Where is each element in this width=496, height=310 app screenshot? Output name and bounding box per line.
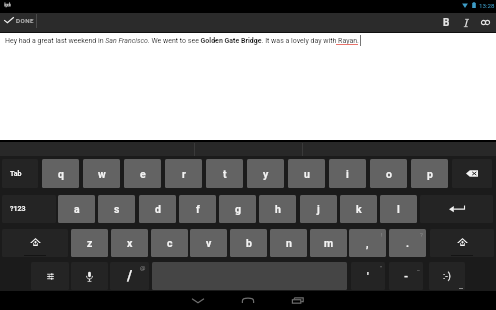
- staticText: d: [155, 203, 161, 215]
- button[interactable]: Tab: [2, 159, 38, 188]
- button[interactable]: h: [259, 195, 296, 223]
- button[interactable]: u: [288, 159, 325, 188]
- button[interactable]: f: [179, 195, 216, 223]
- button[interactable]: Home: [238, 291, 258, 310]
- button[interactable]: ,: [349, 229, 386, 257]
- staticText: x: [127, 237, 133, 249]
- button[interactable]: Insert link: [476, 13, 495, 32]
- staticText: :-): [443, 271, 451, 282]
- button[interactable]: b: [230, 229, 267, 257]
- button[interactable]: :-): [429, 262, 465, 290]
- staticText: a: [74, 203, 80, 215]
- button[interactable]: w: [83, 159, 120, 188]
- staticText: n: [286, 237, 292, 249]
- staticText: c: [167, 237, 173, 249]
- button[interactable]: z: [71, 229, 108, 257]
- staticText: l: [397, 203, 400, 215]
- staticText: s: [114, 203, 120, 215]
- staticText: /: [127, 268, 133, 284]
- button[interactable]: Hide keyboard: [188, 291, 208, 310]
- button[interactable]: Recent apps: [288, 291, 308, 310]
- staticText: f: [196, 203, 200, 215]
- button[interactable]: e: [124, 159, 161, 188]
- staticText: z: [87, 237, 93, 249]
- staticText: b: [246, 237, 252, 249]
- button[interactable]: Input settings: [31, 262, 69, 290]
- staticText: ,: [366, 237, 369, 249]
- staticText: g: [235, 203, 241, 215]
- button[interactable]: Backspace: [452, 159, 492, 188]
- staticText: k: [356, 203, 362, 215]
- staticText: p: [427, 168, 433, 180]
- button[interactable]: l: [380, 195, 417, 223]
- staticText: v: [206, 237, 212, 249]
- staticText: Hey had a great last weekend in San Fran…: [5, 37, 359, 45]
- staticText: ?: [420, 231, 423, 238]
- staticText: j: [317, 203, 320, 215]
- button[interactable]: Shift: [430, 229, 494, 257]
- button[interactable]: r: [165, 159, 202, 188]
- button[interactable]: y: [247, 159, 284, 188]
- button[interactable]: Hey had a great last weekend in San Fran…: [0, 33, 496, 140]
- staticText: m: [324, 237, 334, 249]
- button[interactable]: t: [206, 159, 243, 188]
- button[interactable]: q: [42, 159, 79, 188]
- button[interactable]: Shift: [2, 229, 68, 257]
- staticText: -: [404, 270, 409, 282]
- staticText: r: [182, 168, 186, 180]
- button[interactable]: m: [310, 229, 347, 257]
- button[interactable]: k: [340, 195, 377, 223]
- button[interactable]: Voice input: [71, 262, 108, 290]
- button[interactable]: Enter: [420, 195, 493, 223]
- staticText: _: [417, 264, 420, 271]
- button[interactable]: j: [300, 195, 337, 223]
- staticText: i: [346, 168, 349, 180]
- button[interactable]: g: [219, 195, 256, 223]
- button[interactable]: c: [151, 229, 188, 257]
- button[interactable]: .: [389, 229, 426, 257]
- button[interactable]: p: [411, 159, 448, 188]
- button[interactable]: d: [139, 195, 176, 223]
- button[interactable]: o: [370, 159, 407, 188]
- button[interactable]: x: [111, 229, 148, 257]
- staticText: h: [275, 203, 281, 215]
- button[interactable]: DONE: [0, 13, 36, 32]
- button[interactable]: /: [110, 262, 149, 290]
- button[interactable]: s: [98, 195, 135, 223]
- button[interactable]: B: [437, 13, 456, 32]
- staticText: @: [140, 264, 146, 271]
- staticText: u: [304, 168, 310, 180]
- staticText: 13:28: [479, 2, 495, 9]
- staticText: !: [381, 231, 383, 238]
- button[interactable]: [457, 13, 476, 32]
- staticText: w: [98, 168, 106, 180]
- staticText: Tab: [10, 170, 22, 178]
- staticText: ?123: [10, 205, 26, 213]
- staticText: o: [386, 168, 392, 180]
- button[interactable]: ': [351, 262, 385, 290]
- button[interactable]: a: [58, 195, 95, 223]
- staticText: ': [367, 270, 369, 282]
- button[interactable]: ?123: [2, 195, 56, 223]
- button[interactable]: n: [270, 229, 307, 257]
- staticText: t: [223, 168, 227, 180]
- staticText: B: [443, 17, 450, 29]
- staticText: q: [58, 168, 64, 180]
- button[interactable]: -: [389, 262, 423, 290]
- staticText: y: [263, 168, 269, 180]
- staticText: e: [140, 168, 146, 180]
- staticText: ": [380, 264, 382, 271]
- button[interactable]: i: [329, 159, 366, 188]
- button[interactable]: v: [190, 229, 227, 257]
- staticText: .: [406, 237, 410, 249]
- staticText: DONE: [16, 17, 34, 24]
